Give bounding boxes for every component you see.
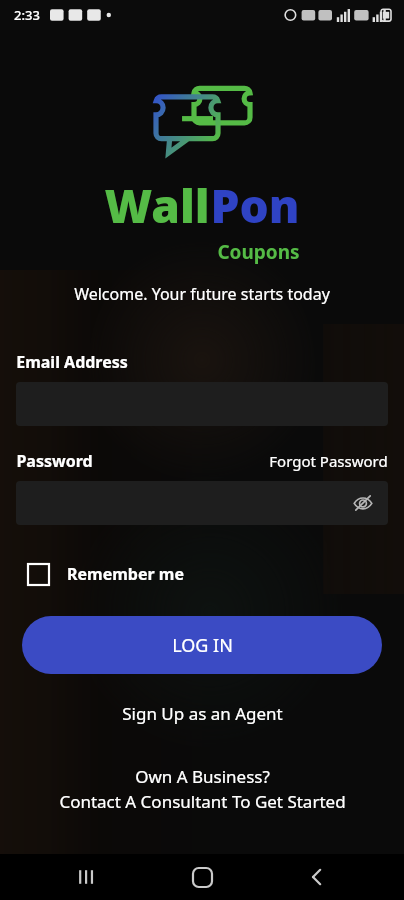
button[interactable]: Home [174, 854, 230, 900]
button[interactable]: Show password [16, 481, 388, 525]
staticText: 2:33 [14, 6, 40, 24]
staticText: LOG IN [172, 633, 233, 658]
button[interactable]: Recent apps [59, 854, 115, 900]
button[interactable]: Back [289, 854, 345, 900]
staticText: Welcome. Your future starts today [74, 283, 330, 305]
staticText: Sign Up as an Agent [122, 702, 283, 725]
button[interactable]: LOG IN [22, 616, 382, 674]
staticText: Own A Business? [135, 765, 270, 788]
staticText: Coupons [217, 239, 300, 265]
button[interactable]: Sign Up as an Agent [116, 696, 289, 731]
staticText: Pon [210, 174, 300, 237]
button[interactable]: Own A Business? [0, 765, 404, 813]
button[interactable]: Show password [350, 490, 376, 516]
button[interactable]: Forgot Password [269, 451, 388, 471]
button[interactable]: Remember me [26, 559, 186, 589]
staticText: Wall [104, 174, 210, 237]
staticText: Contact A Consultant To Get Started [59, 790, 346, 813]
staticText: Forgot Password [269, 451, 388, 471]
staticText: Email Address [16, 351, 128, 373]
staticText: Remember me [67, 563, 184, 585]
staticText: Password [16, 450, 93, 472]
